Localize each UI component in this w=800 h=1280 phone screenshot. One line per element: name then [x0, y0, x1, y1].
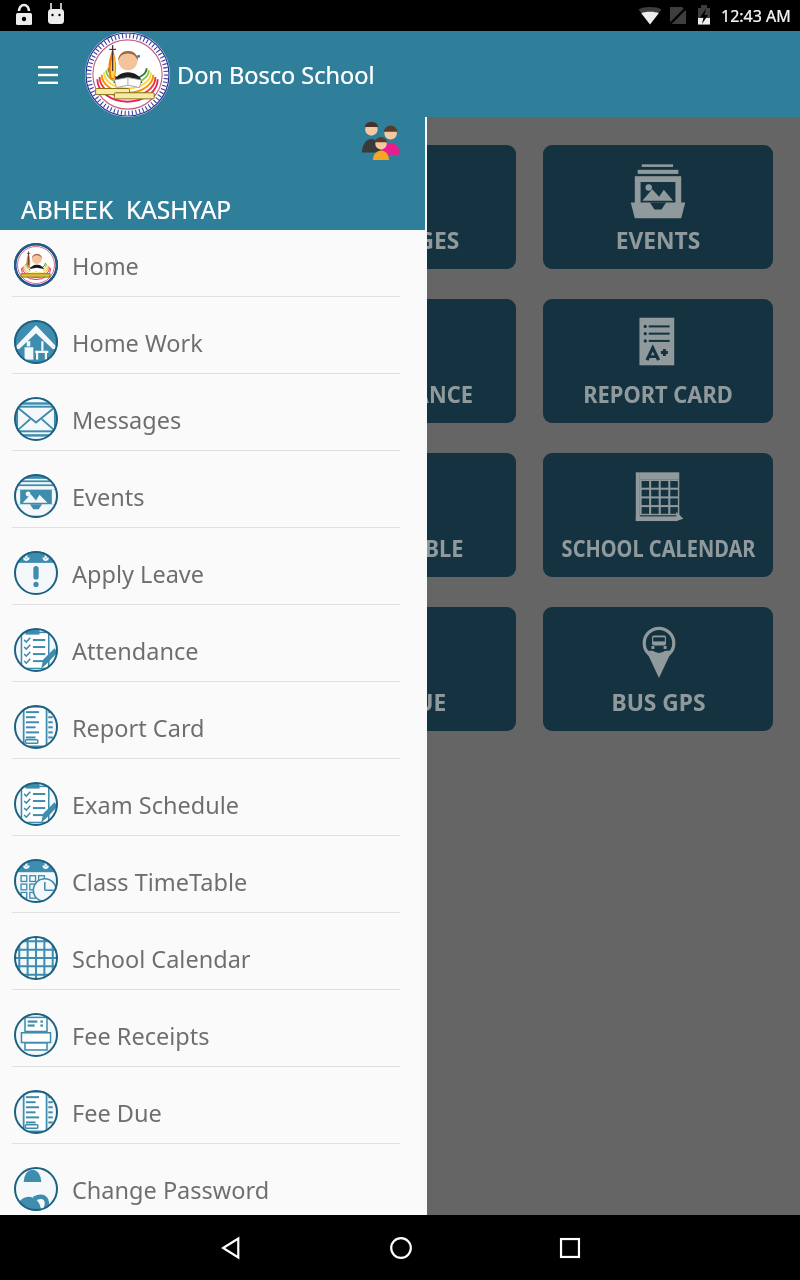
staticText: FEE DUE	[355, 686, 447, 717]
button[interactable]: Report Card	[0, 682, 425, 759]
staticText: ABHEEK KASHYAP	[21, 193, 232, 226]
button[interactable]: Home	[0, 230, 425, 297]
button[interactable]: Events	[0, 451, 425, 528]
staticText: Messages	[72, 404, 182, 436]
button[interactable]: Home	[377, 1224, 425, 1272]
button[interactable]: FEE DUE	[286, 607, 516, 731]
button[interactable]: ATTENDANCE	[286, 299, 516, 423]
staticText: SCHOOL CALENDAR	[561, 532, 755, 563]
staticText: Class TimeTable	[72, 866, 248, 898]
staticText: BUS GPS	[611, 686, 706, 717]
staticText: Home	[72, 250, 139, 282]
staticText: Fee Receipts	[72, 1020, 210, 1052]
staticText: Report Card	[72, 712, 205, 744]
button[interactable]: REPORT CARD	[543, 299, 773, 423]
button[interactable]: BUS GPS	[543, 607, 773, 731]
button[interactable]: TIME TABLE	[286, 453, 516, 577]
staticText: Change Password	[72, 1174, 270, 1206]
staticText: MESSAGES	[343, 224, 459, 255]
button[interactable]: Recent apps	[546, 1224, 594, 1272]
staticText: Don Bosco School	[177, 59, 375, 91]
staticText: School Calendar	[72, 943, 251, 975]
staticText: Exam Schedule	[72, 789, 240, 821]
staticText: Apply Leave	[72, 558, 205, 590]
button[interactable]: SCHOOL CALENDAR	[543, 453, 773, 577]
button[interactable]: MESSAGES	[286, 145, 516, 269]
staticText: Fee Due	[72, 1097, 162, 1129]
button[interactable]: Home Work	[0, 297, 425, 374]
button[interactable]: Fee Due	[0, 1067, 425, 1144]
button[interactable]: Back	[207, 1224, 255, 1272]
button[interactable]: Apply Leave	[0, 528, 425, 605]
staticText: TIME TABLE	[338, 532, 464, 563]
button[interactable]: EVENTS	[543, 145, 773, 269]
staticText: Home Work	[72, 327, 203, 359]
staticText: Attendance	[72, 635, 199, 667]
staticText: REPORT CARD	[583, 378, 733, 409]
staticText: 12:43 AM	[721, 5, 791, 27]
staticText: ATTENDANCE	[329, 378, 473, 409]
button[interactable]: Exam Schedule	[0, 759, 425, 836]
staticText: EVENTS	[615, 224, 700, 255]
button[interactable]: Fee Receipts	[0, 990, 425, 1067]
staticText: Events	[72, 481, 145, 513]
button[interactable]: Messages	[0, 374, 425, 451]
button[interactable]: Open navigation drawer	[24, 51, 72, 99]
button[interactable]: Class TimeTable	[0, 836, 425, 913]
button[interactable]: School Calendar	[0, 913, 425, 990]
button[interactable]: Change Password	[0, 1144, 425, 1205]
button[interactable]: Attendance	[0, 605, 425, 682]
